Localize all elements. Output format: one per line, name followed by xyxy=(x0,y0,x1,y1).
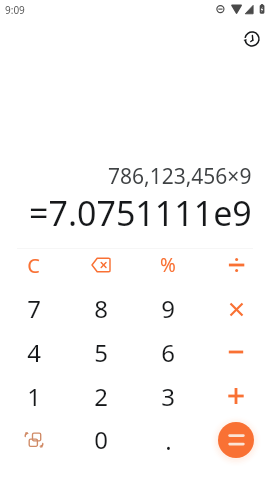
staticText: 786,123,456×9 xyxy=(108,162,252,191)
button[interactable]: History xyxy=(234,21,270,57)
button[interactable]: 1 xyxy=(0,375,67,419)
staticText: 9:09 xyxy=(5,3,25,17)
staticText: % xyxy=(160,252,176,278)
staticText: 1 xyxy=(27,380,41,413)
button[interactable]: Divide xyxy=(202,243,270,287)
staticText: =7.0751111e9 xyxy=(29,190,252,236)
staticText: 5 xyxy=(94,336,108,369)
button[interactable]: 8 xyxy=(67,287,134,331)
staticText: 2 xyxy=(94,380,108,413)
staticText: 0 xyxy=(94,423,108,456)
button[interactable]: Multiply xyxy=(202,287,270,331)
button[interactable]: Delete xyxy=(67,243,134,287)
staticText: 8 xyxy=(94,292,108,325)
staticText: . xyxy=(165,424,172,457)
button[interactable]: Plus xyxy=(202,375,270,419)
button[interactable]: 4 xyxy=(0,331,67,375)
button[interactable]: Minus xyxy=(202,331,270,375)
button[interactable]: 0 xyxy=(67,418,134,462)
button[interactable]: 2 xyxy=(67,375,134,419)
button[interactable]: Equals xyxy=(218,422,254,458)
button[interactable]: 6 xyxy=(134,331,202,375)
button[interactable]: % xyxy=(134,243,202,287)
button[interactable]: 3 xyxy=(134,375,202,419)
staticText: C xyxy=(27,252,40,279)
button[interactable]: . xyxy=(134,418,202,462)
staticText: 6 xyxy=(161,336,175,369)
button[interactable]: 7 xyxy=(0,287,67,331)
button[interactable]: C xyxy=(0,243,67,287)
staticText: 7 xyxy=(27,292,41,325)
button[interactable]: 5 xyxy=(67,331,134,375)
button[interactable]: Unit converter xyxy=(0,418,67,462)
staticText: 4 xyxy=(27,336,41,369)
staticText: 9 xyxy=(161,292,175,325)
button[interactable]: 9 xyxy=(134,287,202,331)
staticText: 3 xyxy=(161,380,175,413)
